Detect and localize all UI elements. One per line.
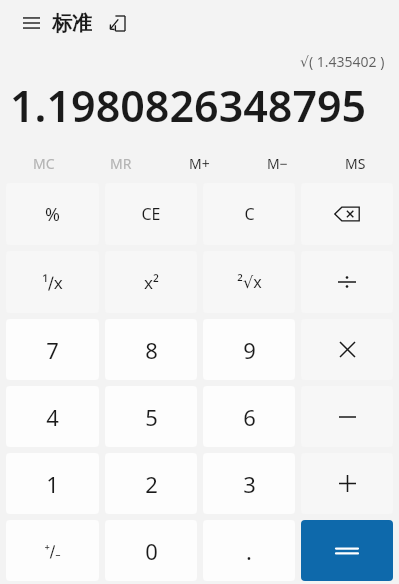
button[interactable]: 3 [203, 453, 295, 514]
staticText: CE [141, 203, 161, 225]
button[interactable]: Plus [301, 453, 393, 514]
staticText: 8 [145, 335, 158, 365]
staticText: ²√x [237, 271, 262, 293]
button[interactable]: Open navigation menu [14, 6, 48, 40]
button[interactable]: CE [105, 183, 197, 245]
staticText: x² [144, 271, 159, 294]
staticText: M− [267, 154, 288, 173]
staticText: 7 [46, 335, 59, 365]
button[interactable]: 6 [203, 386, 295, 447]
staticText: ⁺∕₋ [44, 540, 61, 562]
button[interactable]: x² [105, 251, 197, 313]
staticText: 1 [46, 469, 59, 499]
staticText: √( 1.435402 ) [300, 52, 385, 71]
button[interactable]: 2 [105, 453, 197, 514]
button[interactable]: . [203, 520, 295, 581]
button[interactable]: Backspace [301, 183, 393, 245]
button[interactable]: MS [316, 150, 394, 176]
staticText: 2 [145, 469, 158, 499]
staticText: 4 [46, 402, 59, 432]
staticText: 标准 [52, 11, 92, 36]
staticText: MC [33, 154, 55, 173]
button[interactable]: ²√x [203, 251, 295, 313]
button[interactable]: 9 [203, 319, 295, 380]
staticText: M+ [189, 154, 210, 173]
staticText: C [244, 203, 255, 225]
staticText: 1.198082634879581 [10, 76, 389, 134]
staticText: % [45, 202, 60, 227]
button[interactable]: C [203, 183, 295, 245]
button[interactable]: Divide [301, 251, 393, 313]
button[interactable]: 0 [105, 520, 197, 581]
staticText: MR [110, 154, 132, 173]
staticText: ¹∕x [42, 271, 63, 294]
staticText: . [246, 536, 252, 566]
staticText: 9 [243, 335, 256, 365]
button[interactable]: Minus [301, 386, 393, 447]
button[interactable]: ¹∕x [6, 251, 99, 313]
button[interactable]: MC [5, 150, 82, 176]
button[interactable]: Multiply [301, 319, 393, 380]
staticText: 3 [243, 469, 256, 499]
button[interactable]: 7 [6, 319, 99, 380]
button[interactable]: ⁺∕₋ [6, 520, 99, 581]
button[interactable]: 8 [105, 319, 197, 380]
button[interactable]: 4 [6, 386, 99, 447]
staticText: MS [345, 154, 366, 173]
staticText: 5 [145, 402, 158, 432]
button[interactable]: % [6, 183, 99, 245]
button[interactable]: Equals [301, 520, 393, 581]
staticText: 6 [243, 402, 256, 432]
button[interactable]: M− [238, 150, 316, 176]
button[interactable]: 5 [105, 386, 197, 447]
button[interactable]: MR [82, 150, 160, 176]
button[interactable]: 1 [6, 453, 99, 514]
button[interactable]: M+ [160, 150, 238, 176]
staticText: 0 [145, 536, 158, 566]
button[interactable]: Keep on top [102, 8, 132, 38]
